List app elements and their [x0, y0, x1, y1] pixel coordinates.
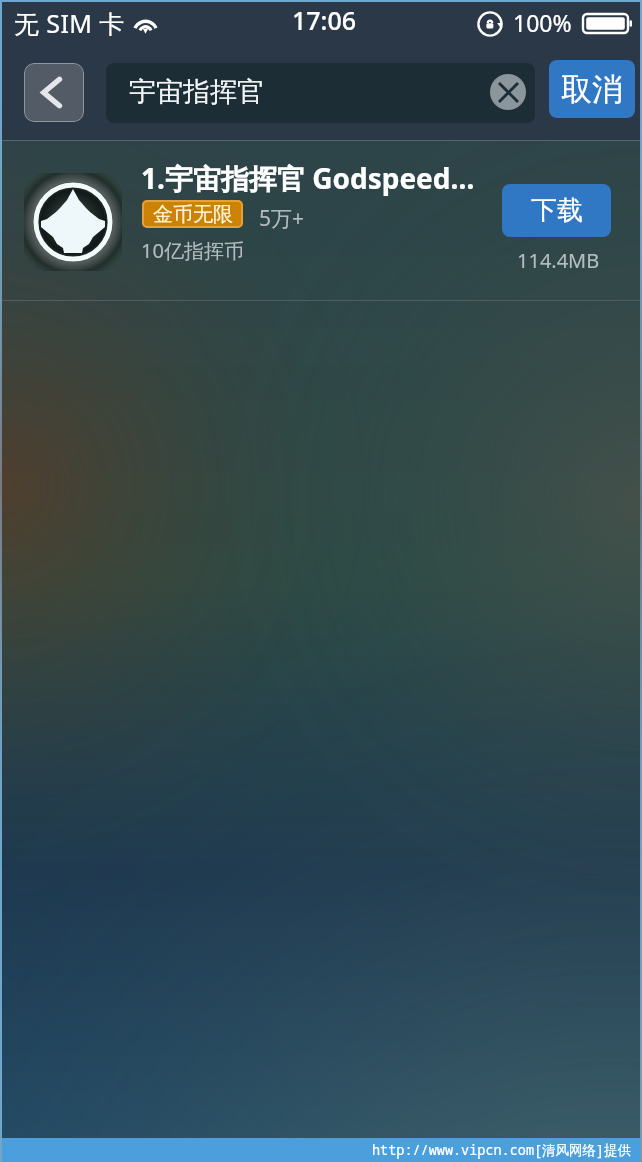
staticText: 金币无限 [153, 202, 233, 227]
staticText: 宇宙指挥官 [129, 75, 264, 109]
staticText: 1.宇宙指挥官 Godspeed… [141, 159, 475, 197]
staticText: 取消 [561, 70, 623, 109]
staticText: 下载 [531, 194, 583, 227]
button[interactable]: 1.宇宙指挥官 Godspeed… [2, 142, 640, 300]
staticText: 10亿指挥币 [141, 237, 244, 264]
button[interactable]: 宇宙指挥官 [106, 63, 535, 123]
button[interactable]: 下载 [502, 184, 611, 237]
staticText: 17:06 [292, 3, 357, 37]
staticText: 100% [513, 7, 572, 38]
staticText: 5万+ [259, 204, 305, 233]
button[interactable]: Back [24, 63, 84, 122]
staticText: http://www.vipcn.com[清风网络]提供 [372, 1141, 632, 1159]
staticText: 无 SIM 卡 [14, 6, 125, 40]
staticText: 114.4MB [517, 247, 600, 274]
button[interactable]: Clear search [490, 74, 526, 110]
button[interactable]: 取消 [549, 60, 635, 118]
